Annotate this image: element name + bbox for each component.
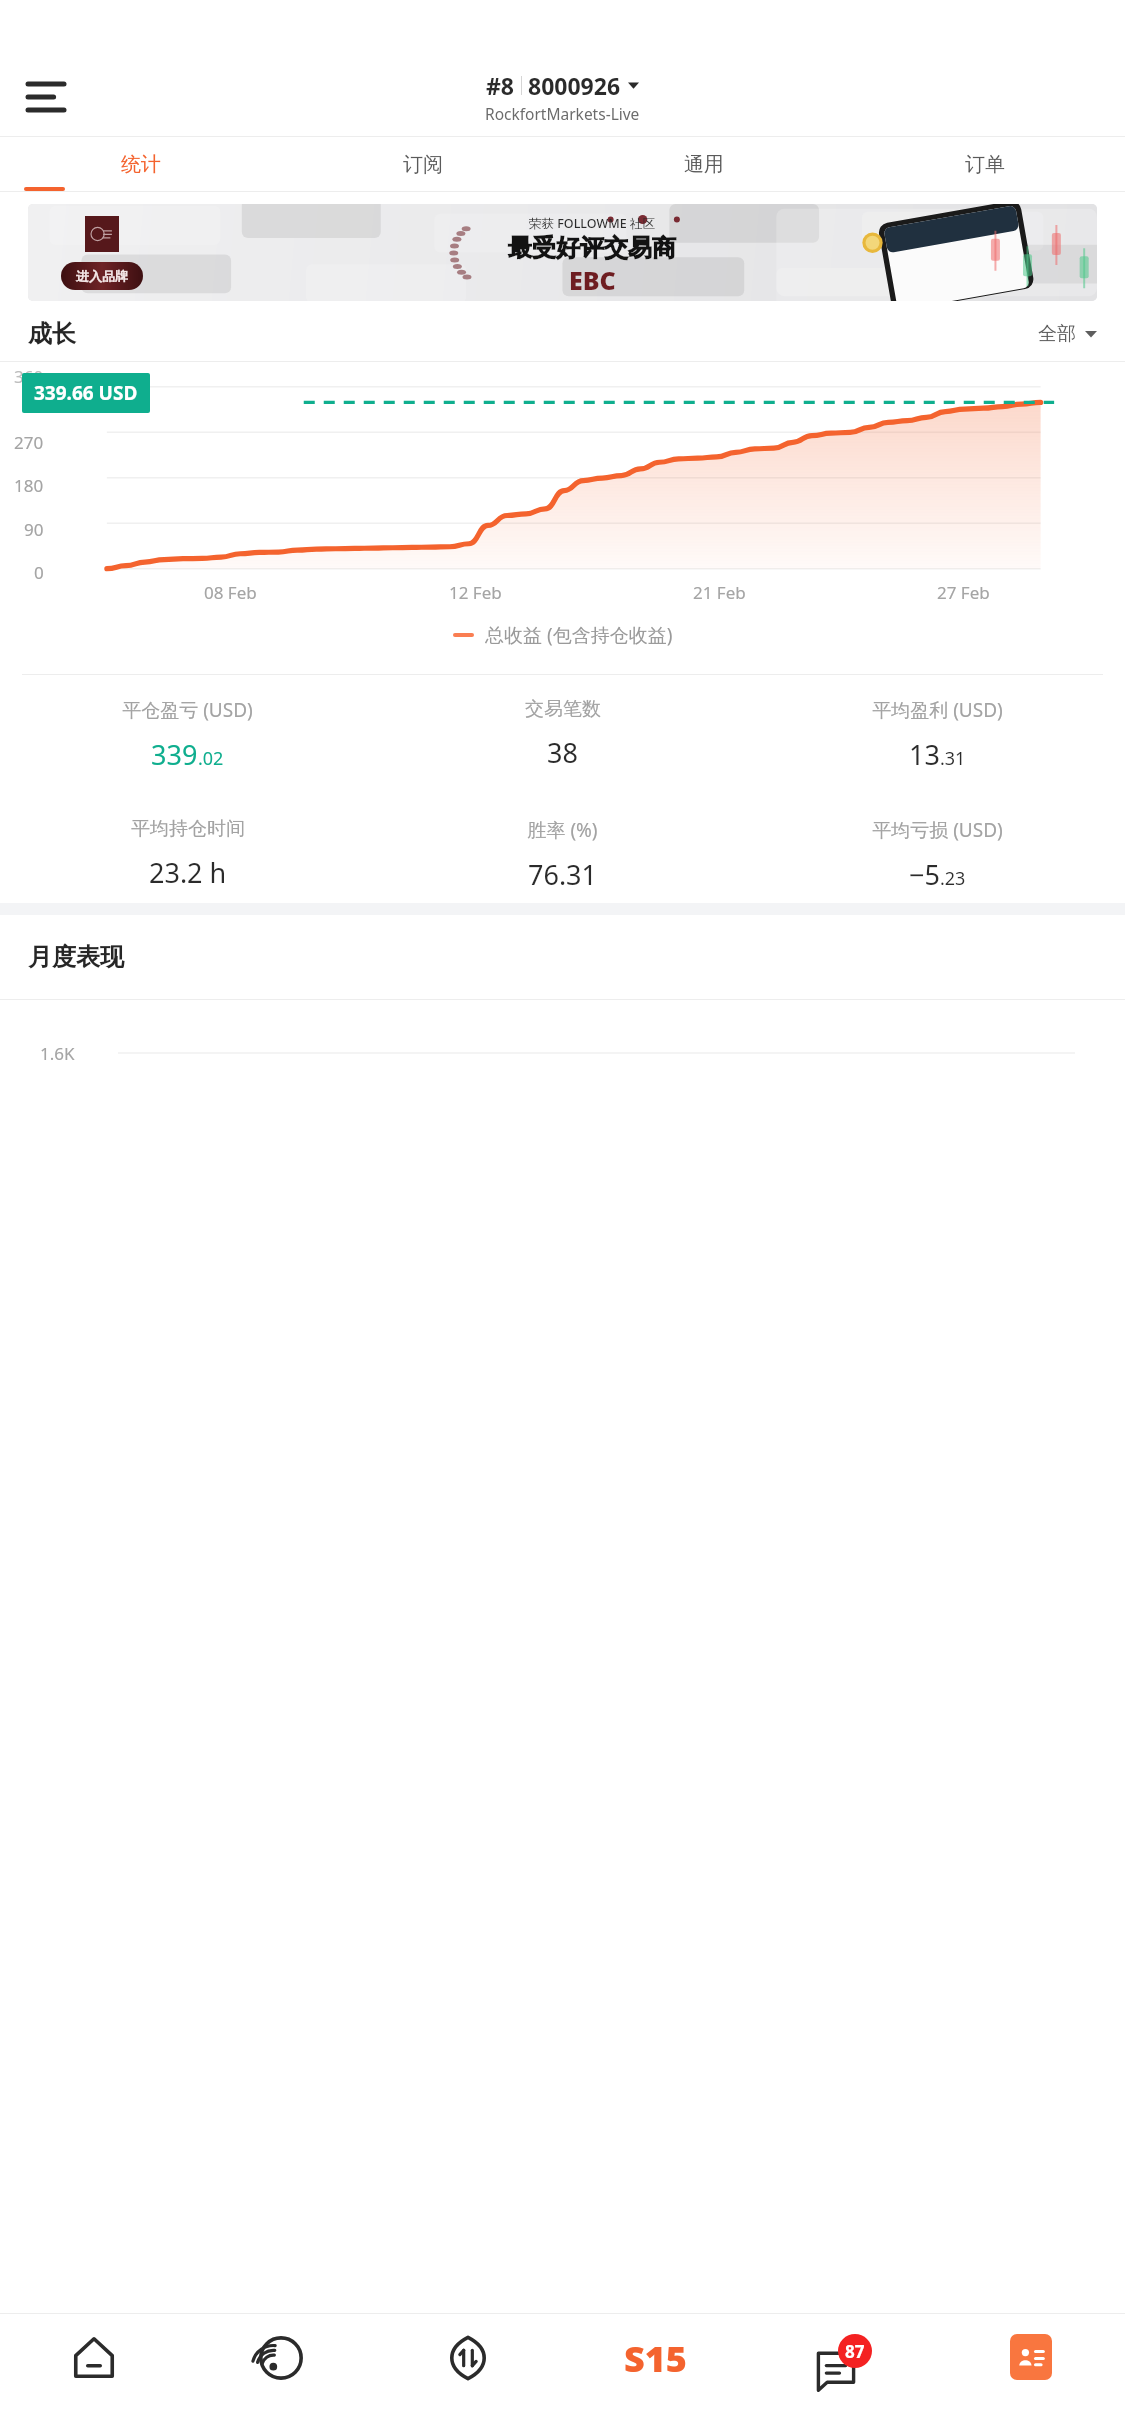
button[interactable]: 进入品牌 bbox=[28, 204, 1097, 301]
staticText: 平均持仓时间 bbox=[131, 817, 245, 841]
button[interactable]: Trade bbox=[374, 2314, 561, 2436]
staticText: 339.66 USD bbox=[34, 380, 138, 406]
staticText: 统计 bbox=[121, 152, 161, 177]
staticText: 胜率 (%) bbox=[527, 817, 598, 843]
staticText: 订单 bbox=[965, 152, 1005, 177]
staticText: EBC bbox=[569, 263, 616, 297]
staticText: 1.6K bbox=[40, 1042, 75, 1065]
button[interactable]: #8 bbox=[485, 70, 640, 124]
staticText: 13 bbox=[909, 736, 940, 773]
staticText: −5 bbox=[909, 856, 940, 893]
staticText: 总收益 (包含持仓收益) bbox=[485, 622, 673, 648]
staticText: 平均亏损 (USD) bbox=[872, 817, 1003, 843]
staticText: .23 bbox=[940, 866, 966, 891]
staticText: 进入品牌 bbox=[76, 268, 128, 284]
staticText: 270 bbox=[14, 431, 44, 454]
button[interactable]: 订阅 bbox=[282, 137, 563, 191]
button[interactable]: 进入品牌 bbox=[61, 262, 143, 290]
button[interactable]: 通用 bbox=[563, 137, 844, 191]
staticText: 最受好评交易商 bbox=[508, 233, 676, 263]
staticText: .02 bbox=[198, 746, 224, 771]
staticText: 21 Feb bbox=[693, 581, 746, 604]
staticText: 360 bbox=[14, 365, 44, 388]
staticText: 87 bbox=[845, 2340, 865, 2363]
button[interactable]: Messages bbox=[749, 2314, 937, 2436]
staticText: 12 Feb bbox=[449, 581, 502, 604]
button[interactable]: 订单 bbox=[844, 137, 1125, 191]
staticText: 交易笔数 bbox=[525, 697, 601, 721]
button[interactable]: Menu bbox=[18, 69, 74, 125]
staticText: 通用 bbox=[684, 152, 724, 177]
staticText: 90 bbox=[24, 518, 44, 541]
button[interactable]: Profile bbox=[937, 2314, 1125, 2436]
button[interactable]: S15 bbox=[561, 2314, 749, 2436]
staticText: 0 bbox=[34, 561, 44, 584]
button[interactable]: 全部 bbox=[1038, 322, 1097, 346]
staticText: RockfortMarkets-Live bbox=[485, 103, 640, 124]
button[interactable]: Home bbox=[0, 2314, 187, 2436]
staticText: 订阅 bbox=[403, 152, 443, 177]
staticText: 76.31 bbox=[528, 856, 598, 893]
staticText: 平仓盈亏 (USD) bbox=[122, 697, 253, 723]
staticText: #8 bbox=[486, 70, 515, 101]
staticText: 27 Feb bbox=[937, 581, 990, 604]
button[interactable]: 统计 bbox=[0, 137, 282, 191]
staticText: 月度表现 bbox=[28, 942, 124, 972]
staticText: 339 bbox=[151, 736, 198, 773]
button[interactable]: Signals bbox=[187, 2314, 374, 2436]
staticText: 荣获 FOLLOWME 社区 bbox=[529, 215, 655, 232]
staticText: 38 bbox=[547, 734, 578, 771]
staticText: .31 bbox=[940, 746, 966, 771]
staticText: 平均盈利 (USD) bbox=[872, 697, 1003, 723]
staticText: 全部 bbox=[1038, 322, 1076, 346]
staticText: 23.2 h bbox=[149, 854, 227, 891]
staticText: 8000926 bbox=[528, 70, 621, 101]
staticText: S15 bbox=[624, 2334, 687, 2383]
staticText: 180 bbox=[14, 474, 44, 497]
staticText: 成长 bbox=[28, 319, 76, 349]
staticText: 08 Feb bbox=[204, 581, 257, 604]
